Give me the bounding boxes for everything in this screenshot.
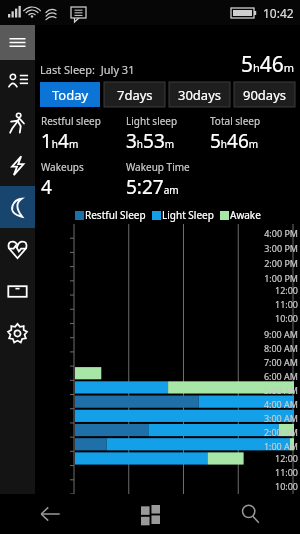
button[interactable]: Today (40, 82, 100, 107)
staticText: Last Sleep: July 31 (40, 62, 135, 77)
staticText: 5h46m (241, 50, 295, 79)
staticText: 7:00 AM (263, 356, 298, 368)
staticText: 1:00 PM (263, 272, 298, 284)
staticText: 4 (41, 174, 52, 200)
staticText: 10:00 AM (263, 312, 298, 326)
button[interactable]: Activity (0, 144, 35, 186)
staticText: 6:00 AM (263, 370, 298, 382)
staticText: 7days (117, 86, 153, 104)
staticText: 3:00 PM (263, 242, 298, 254)
staticText: 5:00 AM (263, 384, 298, 396)
staticText: 8:00 AM (263, 342, 298, 354)
staticText: 3h53m (126, 128, 175, 154)
staticText: 12:00 AM (263, 452, 298, 466)
button[interactable]: 90days (234, 82, 295, 107)
button[interactable]: Search (200, 494, 300, 534)
staticText: 11:00 AM (263, 298, 298, 312)
staticText: 12:00 PM (263, 284, 298, 298)
staticText: Awake (230, 208, 261, 222)
staticText: 11:00 PM (263, 466, 298, 480)
staticText: 10:00 PM (263, 480, 298, 494)
button[interactable]: 30days (169, 82, 230, 107)
button[interactable]: 7days (104, 82, 165, 107)
staticText: Restful Sleep (85, 208, 146, 222)
button[interactable]: Device (0, 270, 35, 312)
staticText: 10:42 (263, 5, 294, 21)
button[interactable]: Heart rate (0, 228, 35, 270)
staticText: 4:00 AM (263, 398, 298, 410)
staticText: 90days (243, 86, 287, 104)
staticText: 30days (178, 86, 222, 104)
staticText: Wakeup Time (126, 160, 190, 174)
button[interactable]: Sleep (0, 186, 35, 228)
staticText: Total sleep (210, 114, 261, 128)
staticText: 3:00 AM (263, 412, 298, 424)
button[interactable]: Steps (0, 102, 35, 144)
staticText: 2:00 PM (263, 257, 298, 269)
button[interactable]: Start (100, 494, 200, 534)
staticText: 9:00 AM (263, 328, 298, 340)
staticText: Wakeups (41, 160, 84, 174)
staticText: 2:00 AM (263, 426, 298, 438)
staticText: 1:00 AM (263, 440, 298, 452)
staticText: 5h46m (210, 128, 259, 154)
staticText: Light Sleep (162, 208, 214, 222)
staticText: 5:27am (126, 174, 179, 200)
button[interactable]: Menu (0, 25, 35, 60)
staticText: Today (52, 86, 89, 104)
button[interactable]: Settings (0, 312, 35, 354)
staticText: 4:00 PM (263, 227, 298, 239)
staticText: Restful sleep (41, 114, 101, 128)
button[interactable]: Profile (0, 60, 35, 102)
button[interactable]: Back (0, 494, 100, 534)
staticText: Light sleep (126, 114, 178, 128)
staticText: 1h4m (41, 128, 79, 154)
